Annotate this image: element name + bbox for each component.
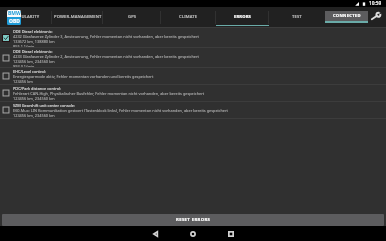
staticText: E60-Mux: LIN Kommunikation gestoert (Tas…	[13, 108, 228, 113]
button[interactable]: Settings	[368, 10, 384, 23]
button[interactable]: POWER-MANAGEMENT	[52, 7, 103, 27]
staticText: PDC/Park distance control:	[13, 86, 62, 91]
staticText: POWER-MANAGEMENT	[54, 14, 102, 20]
staticText: 855.1 1/min	[13, 44, 35, 47]
staticText: RESET ERRORS	[176, 217, 211, 223]
button[interactable]: GPS	[103, 7, 161, 27]
button[interactable]: Recents	[222, 226, 240, 241]
staticText: CONNECTED	[333, 13, 361, 19]
staticText: GPS	[128, 14, 137, 20]
staticText: OBD	[9, 18, 20, 25]
button[interactable]: CLIMATE	[161, 7, 216, 27]
button[interactable]: Back	[146, 226, 164, 241]
staticText: TEST	[292, 14, 302, 20]
staticText: REGULARITY	[13, 14, 40, 20]
staticText: 10:59	[369, 0, 382, 7]
staticText: EHC/Level control:	[13, 69, 46, 74]
staticText: DDE Diesel elektronic:	[13, 29, 53, 34]
staticText: ERRORS	[234, 14, 251, 20]
staticText: Fehlerart CAN-High, Physikalischer Busfe…	[13, 91, 205, 96]
staticText: Energiesparmode aktiv, Fehler momentan v…	[13, 74, 154, 79]
button[interactable]: CONNECTED	[325, 11, 368, 23]
button[interactable]: SZM Gearshift unit center console:	[0, 102, 386, 118]
staticText: 123456 km	[13, 79, 33, 84]
button[interactable]: DDE Diesel elektronic:	[0, 48, 386, 67]
staticText: DDE Diesel elektronic:	[13, 49, 53, 54]
staticText: 133672 km, 138880 km	[13, 39, 55, 44]
button[interactable]: RESET ERRORS	[2, 214, 384, 226]
button[interactable]: REGULARITY	[0, 7, 52, 27]
staticText: 993.0 1/min	[13, 64, 35, 67]
staticText: 4232 Glasfaserze Zylinder 3, Ansteuerung…	[13, 34, 199, 39]
button[interactable]: PDC/Park distance control:	[0, 85, 386, 101]
staticText: 123456 km, 234560 km	[13, 59, 55, 64]
staticText: 4233 Glasfaserze Zylinder 2, Ansteuerung…	[13, 54, 199, 59]
staticText: CLIMATE	[179, 14, 198, 20]
button[interactable]: TEST	[269, 7, 325, 27]
button[interactable]: BMW OBD	[7, 10, 21, 25]
button[interactable]: ERRORS	[216, 7, 269, 27]
staticText: 123456 km, 234560 km	[13, 113, 55, 118]
staticText: 123456 km, 234560 km	[13, 96, 55, 101]
staticText: BMW	[8, 10, 21, 17]
staticText: SZM Gearshift unit center console:	[13, 103, 75, 108]
button[interactable]: Home	[184, 226, 202, 241]
button[interactable]: EHC/Level control:	[0, 68, 386, 84]
button[interactable]: DDE Diesel elektronic:	[0, 28, 386, 47]
